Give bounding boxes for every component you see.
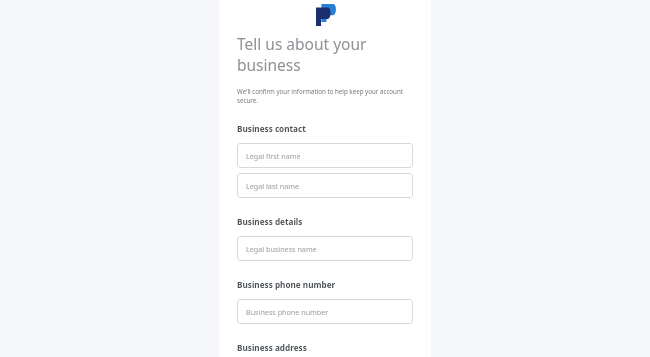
button[interactable]: Business phone number [237,299,413,324]
staticText: Business contact [237,123,306,134]
staticText: Business details [237,216,303,227]
button[interactable]: Legal business name [237,236,413,261]
staticText: Legal last name [246,181,300,191]
staticText: Legal business name [246,244,317,254]
staticText: business [237,54,301,75]
staticText: Business phone number [246,307,329,317]
button[interactable]: Legal first name [237,143,413,168]
staticText: We'll confirm your information to help k… [237,87,413,105]
button[interactable]: PayPal [314,4,336,26]
staticText: Business phone number [237,279,336,290]
staticText: Legal first name [246,151,301,161]
staticText: Business address [237,342,307,353]
staticText: Tell us about your [237,33,367,54]
button[interactable]: Legal last name [237,173,413,198]
